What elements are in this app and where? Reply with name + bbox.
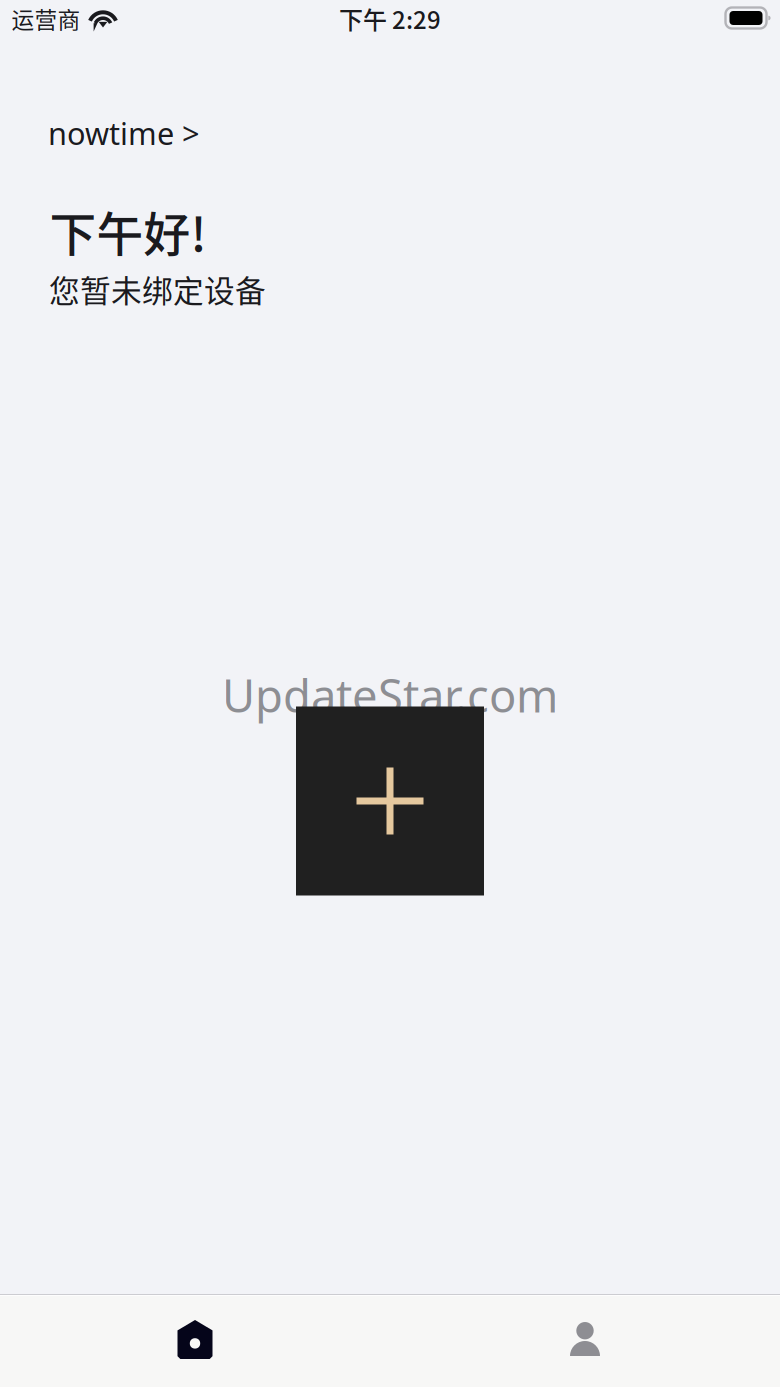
staticText: nowtime > — [48, 113, 200, 153]
button[interactable]: 我的 — [390, 1294, 780, 1387]
button[interactable]: 首页 — [0, 1294, 390, 1387]
staticText: 您暂未绑定设备 — [49, 267, 266, 311]
staticText: 下午 2:29 — [339, 1, 441, 36]
staticText: 下午好! — [49, 197, 206, 265]
button[interactable]: nowtime > — [48, 107, 210, 159]
staticText: UpdateStar.com — [222, 665, 558, 725]
button[interactable]: 添加设备 — [296, 706, 484, 895]
staticText: 运营商 — [11, 2, 80, 35]
